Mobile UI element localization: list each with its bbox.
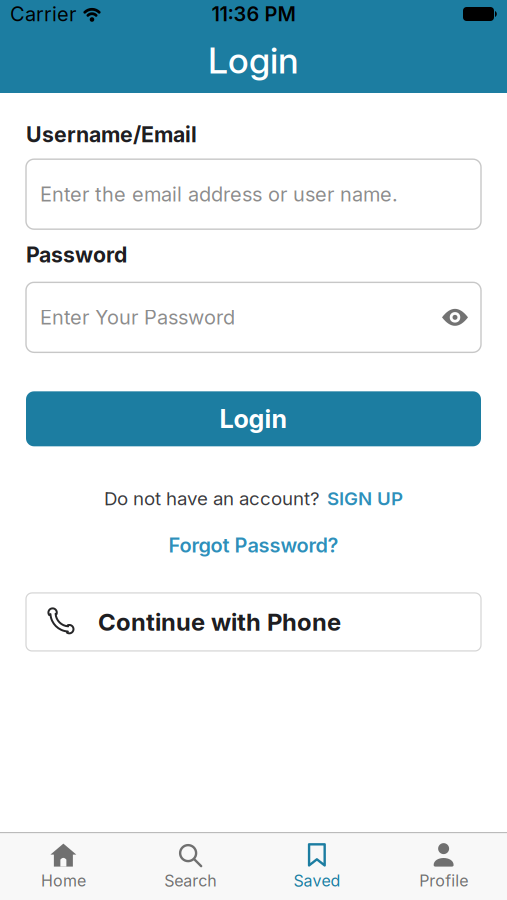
button[interactable]: Forgot Password? <box>168 533 338 557</box>
staticText: Home <box>41 871 86 890</box>
staticText: Enter the email address or user name. <box>40 182 398 206</box>
button[interactable]: Password <box>26 282 481 352</box>
button[interactable]: Profile <box>380 843 507 890</box>
button[interactable]: Username or email <box>26 159 481 229</box>
staticText: Login <box>219 404 287 434</box>
button[interactable]: Saved <box>253 843 380 890</box>
button[interactable]: Continue with Phone <box>26 593 481 651</box>
button[interactable]: Login <box>26 391 481 446</box>
staticText: Search <box>164 871 216 890</box>
staticText: Profile <box>419 871 468 890</box>
staticText: SIGN UP <box>327 487 403 509</box>
staticText: Saved <box>293 871 340 890</box>
staticText: Username/Email <box>26 122 197 147</box>
staticText: Do not have an account? <box>104 487 320 509</box>
button[interactable]: Show password <box>442 308 481 326</box>
staticText: Password <box>26 242 127 267</box>
staticText: Login <box>208 39 299 82</box>
staticText: Enter Your Password <box>40 305 235 329</box>
button[interactable]: SIGN UP <box>327 487 403 509</box>
staticText: Continue with Phone <box>98 608 341 636</box>
button[interactable]: Home <box>0 843 127 890</box>
staticText: Carrier <box>10 2 76 26</box>
button[interactable]: Search <box>127 843 254 890</box>
staticText: Forgot Password? <box>168 533 338 557</box>
staticText: 11:36 PM <box>211 2 295 26</box>
